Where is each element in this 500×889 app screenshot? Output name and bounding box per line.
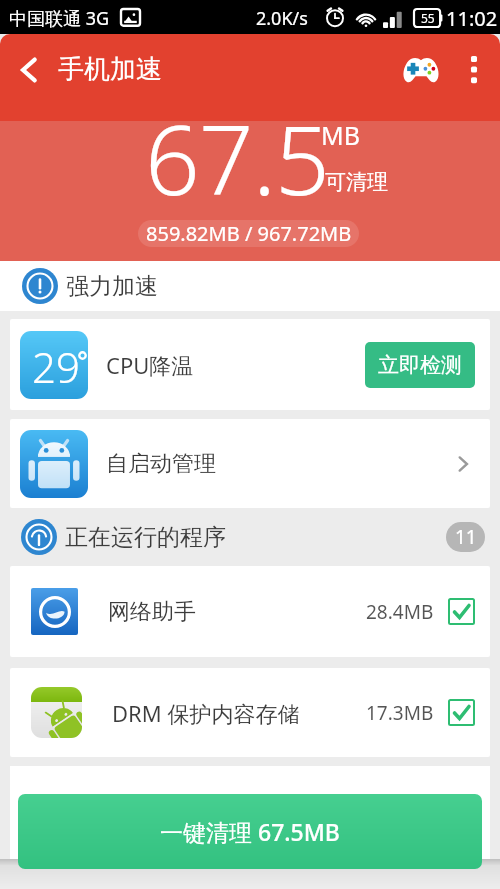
button[interactable]: 自启动管理 xyxy=(10,419,490,508)
staticText: 28.4MB xyxy=(366,599,434,625)
staticText: 17.3MB xyxy=(366,700,434,726)
staticText: 一键清理 67.5MB xyxy=(160,816,340,847)
button[interactable]: Games xyxy=(395,34,447,105)
button[interactable]: More options xyxy=(447,34,500,105)
staticText: 859.82MB / 967.72MB xyxy=(146,220,352,247)
staticText: MB xyxy=(321,118,360,152)
staticText: 11:02 xyxy=(446,5,498,32)
staticText: DRM 保护内容存储 xyxy=(112,698,300,728)
button[interactable]: DRM 保护内容存储 xyxy=(10,668,490,757)
button[interactable]: 网络助手 xyxy=(10,566,490,657)
staticText: 2.0K/s xyxy=(256,6,308,31)
staticText: 中国联通 3G xyxy=(9,6,110,31)
staticText: 55 xyxy=(421,10,435,26)
staticText: 正在运行的程序 xyxy=(65,523,226,552)
button[interactable]: 立即检测 xyxy=(365,342,475,388)
staticText: 手机加速 xyxy=(58,53,162,86)
button[interactable]: 29 xyxy=(10,319,490,410)
button[interactable]: 一键清理 67.5MB xyxy=(18,794,482,869)
staticText: 可清理 xyxy=(325,169,388,195)
staticText: 网络助手 xyxy=(108,598,196,626)
button[interactable]: Selected xyxy=(449,599,474,624)
staticText: 67.5 xyxy=(145,92,329,223)
staticText: 立即检测 xyxy=(378,352,462,378)
staticText: 强力加速 xyxy=(66,272,158,301)
staticText: CPU降温 xyxy=(106,350,194,380)
button[interactable]: Back xyxy=(0,34,58,105)
staticText: 11 xyxy=(455,524,477,550)
button[interactable]: Selected xyxy=(449,700,474,725)
staticText: 29 xyxy=(32,338,80,395)
staticText: 自启动管理 xyxy=(106,450,216,478)
